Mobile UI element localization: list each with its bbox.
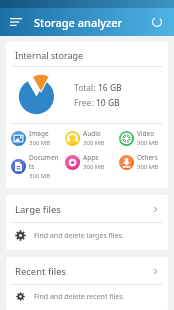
staticText: Documents <box>29 153 60 171</box>
staticText: Free: <box>74 97 96 109</box>
staticText: Recent files <box>15 265 152 278</box>
staticText: Storage analyzer <box>34 15 123 30</box>
staticText: 300 MB <box>83 163 105 171</box>
staticText: Large files <box>15 203 152 216</box>
staticText: Video <box>137 129 155 138</box>
staticText: Total: <box>74 82 98 94</box>
button[interactable]: Recent files <box>6 257 168 284</box>
staticText: 300 MB <box>83 139 105 147</box>
button[interactable]: Others <box>114 153 168 171</box>
staticText: Others <box>137 153 158 162</box>
staticText: 300 MB <box>137 163 159 171</box>
staticText: 300 MB <box>137 139 159 147</box>
staticText: Find and delete larges files. <box>34 231 124 241</box>
button[interactable]: Find and delete recent files. <box>6 285 168 310</box>
staticText: 300 MB <box>29 139 51 147</box>
staticText: Apps <box>83 153 99 162</box>
staticText: Find and delete recent files. <box>34 292 125 301</box>
button[interactable]: Video <box>114 129 168 147</box>
button[interactable]: Image <box>6 129 60 147</box>
button[interactable]: Refresh <box>147 12 167 32</box>
button[interactable]: Open navigation menu <box>6 12 26 32</box>
button[interactable]: Find and delete larges files. <box>6 223 168 250</box>
button[interactable]: Large files <box>6 195 168 222</box>
staticText: 300 MB <box>29 172 51 180</box>
staticText: Audio <box>83 129 101 138</box>
staticText: 16 GB <box>98 82 122 94</box>
staticText: Internal storage <box>15 49 84 61</box>
button[interactable]: Apps <box>60 153 114 171</box>
button[interactable]: Documents <box>6 153 60 180</box>
button[interactable]: Audio <box>60 129 114 147</box>
staticText: Image <box>29 129 49 138</box>
staticText: 10 GB <box>96 97 120 109</box>
